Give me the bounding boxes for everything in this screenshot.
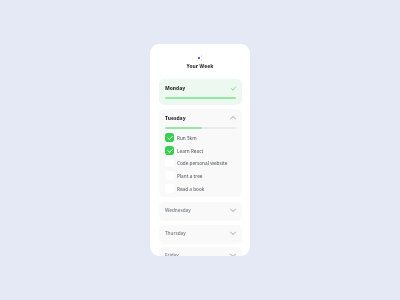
staticText: Wednesday — [165, 207, 191, 213]
other: Expand day — [230, 230, 236, 236]
staticText: Learn React — [177, 148, 204, 154]
button[interactable]: Wednesday — [159, 202, 242, 221]
staticText: Code personal website — [177, 160, 228, 166]
button[interactable]: Read a book — [165, 182, 236, 195]
staticText: Thursday — [165, 230, 186, 236]
staticText: Plant a tree — [177, 173, 203, 179]
staticText: Tuesday — [165, 115, 186, 122]
other: Expand day — [230, 252, 236, 256]
staticText: Read a book — [177, 186, 205, 192]
other: Expand day — [230, 207, 236, 213]
staticText: Run 5km — [177, 135, 197, 141]
other: Collapse Tuesday — [230, 115, 236, 121]
button[interactable]: Code personal website — [165, 156, 236, 169]
button[interactable]: Thursday — [159, 225, 242, 244]
button[interactable]: Tuesday — [165, 109, 236, 127]
button[interactable]: Plant a tree — [165, 169, 236, 182]
staticText: Friday — [165, 252, 179, 256]
staticText: Your Week — [150, 63, 250, 70]
button[interactable]: Learn React — [165, 144, 236, 157]
button[interactable]: Friday — [159, 247, 242, 256]
staticText: Monday — [165, 85, 186, 92]
button[interactable]: Monday — [159, 79, 242, 105]
button[interactable]: Run 5km — [165, 131, 236, 144]
